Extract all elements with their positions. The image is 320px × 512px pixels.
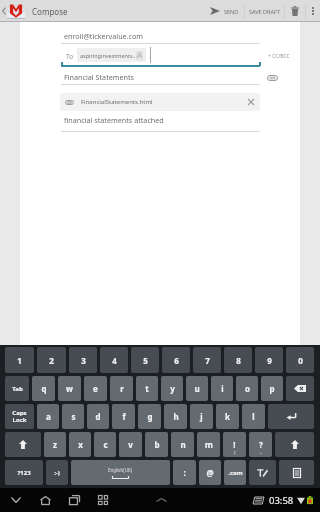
other: Shift [291,440,299,449]
button[interactable]: :-) [46,460,68,485]
button[interactable]: SAVE DRAFT [245,0,284,22]
button[interactable]: n [171,432,194,457]
staticText: r [120,383,124,394]
button[interactable]: 1 [5,347,34,373]
button[interactable]: Navigate up [0,0,28,22]
button[interactable]: q [32,376,55,401]
staticText: FinancialStatements.html [81,98,153,106]
staticText: y [170,383,175,394]
button[interactable]: g [138,404,161,429]
button[interactable]: ? [249,432,272,457]
button[interactable]: 5 [131,347,159,373]
button[interactable]: a [37,404,59,429]
other: Backspace [294,385,306,392]
button[interactable]: i [211,376,233,401]
button[interactable]: Space [71,460,170,485]
other: Enter [286,412,297,421]
button[interactable]: Hide keyboard [5,489,27,511]
button[interactable]: Caps Lock [5,404,34,429]
staticText: : [183,467,186,478]
button[interactable]: v [119,432,142,457]
button[interactable]: w [58,376,81,401]
button[interactable]: Keyboard settings [279,460,314,485]
button[interactable]: ! [223,432,246,457]
button[interactable]: ?123 [5,460,43,485]
button[interactable]: Shift [275,432,314,457]
button[interactable]: Discard [285,0,305,22]
button[interactable]: FinancialStatements.html [60,93,260,111]
staticText: ?123 [17,469,31,477]
button[interactable]: aspiringinvestments.. [77,48,146,62]
staticText: SEND [224,8,239,15]
button[interactable]: Choose input method [252,496,264,505]
button[interactable]: z [44,432,66,457]
button[interactable]: Enter [268,404,314,429]
staticText: . [260,448,262,455]
staticText: v [128,439,133,450]
button[interactable]: 9 [255,347,283,373]
button[interactable]: Handwriting [249,460,276,485]
staticText: SAVE DRAFT [249,8,280,15]
button[interactable]: j [190,404,213,429]
button[interactable]: b [145,432,168,457]
staticText: aspiringinvestments.. [80,52,136,59]
button[interactable]: t [136,376,158,401]
button[interactable]: e [84,376,107,401]
button[interactable]: 7 [193,347,221,373]
staticText: ! [233,439,236,450]
staticText: m [205,439,213,450]
button[interactable]: @ [199,460,221,485]
button[interactable]: Backspace [286,376,314,401]
button[interactable]: Home [34,489,56,511]
button[interactable]: u [186,376,208,401]
staticText: w [66,383,73,394]
staticText: c [103,439,108,450]
staticText: English(UK) [108,467,133,473]
button[interactable]: SEND [205,0,244,22]
staticText: 03:58 [269,494,294,507]
button[interactable]: 3 [69,347,97,373]
other: Space [108,467,133,479]
button[interactable]: 6 [162,347,190,373]
button[interactable]: Remove attachment [243,94,259,110]
staticText: 3 [81,355,86,366]
button[interactable]: Screenshot [92,489,114,511]
button[interactable]: Shift [5,432,41,457]
button[interactable]: More options [306,0,320,22]
button[interactable]: Tab [5,376,29,401]
staticText: t [145,383,149,394]
button[interactable]: 4 [100,347,128,373]
button[interactable]: x [69,432,91,457]
button[interactable]: .com [224,460,246,485]
button[interactable]: h [164,404,187,429]
button[interactable]: 8 [224,347,252,373]
button[interactable]: r [110,376,133,401]
button[interactable]: Notifications [150,489,172,511]
staticText: 2 [49,355,54,366]
staticText: Tab [12,385,23,393]
button[interactable]: k [216,404,239,429]
other: Keyboard settings [293,468,301,478]
button[interactable]: m [197,432,220,457]
button[interactable]: 0 [286,347,314,373]
staticText: n [180,439,186,450]
button[interactable]: d [87,404,109,429]
button[interactable]: Attach file [262,70,282,86]
button[interactable]: p [261,376,283,401]
button[interactable]: s [62,404,84,429]
staticText: 5 [143,355,148,366]
button[interactable]: l [242,404,265,429]
button[interactable]: o [236,376,258,401]
button[interactable]: : [173,460,196,485]
staticText: o [245,383,250,394]
button[interactable]: Recent apps [63,489,85,511]
staticText: z [53,439,57,450]
staticText: Compose [32,6,68,17]
staticText: :-) [54,469,60,477]
staticText: Caps Lock [12,409,27,424]
button[interactable]: f [112,404,135,429]
staticText: 6 [174,355,179,366]
button[interactable]: c [94,432,116,457]
button[interactable]: 2 [37,347,66,373]
button[interactable]: y [161,376,183,401]
